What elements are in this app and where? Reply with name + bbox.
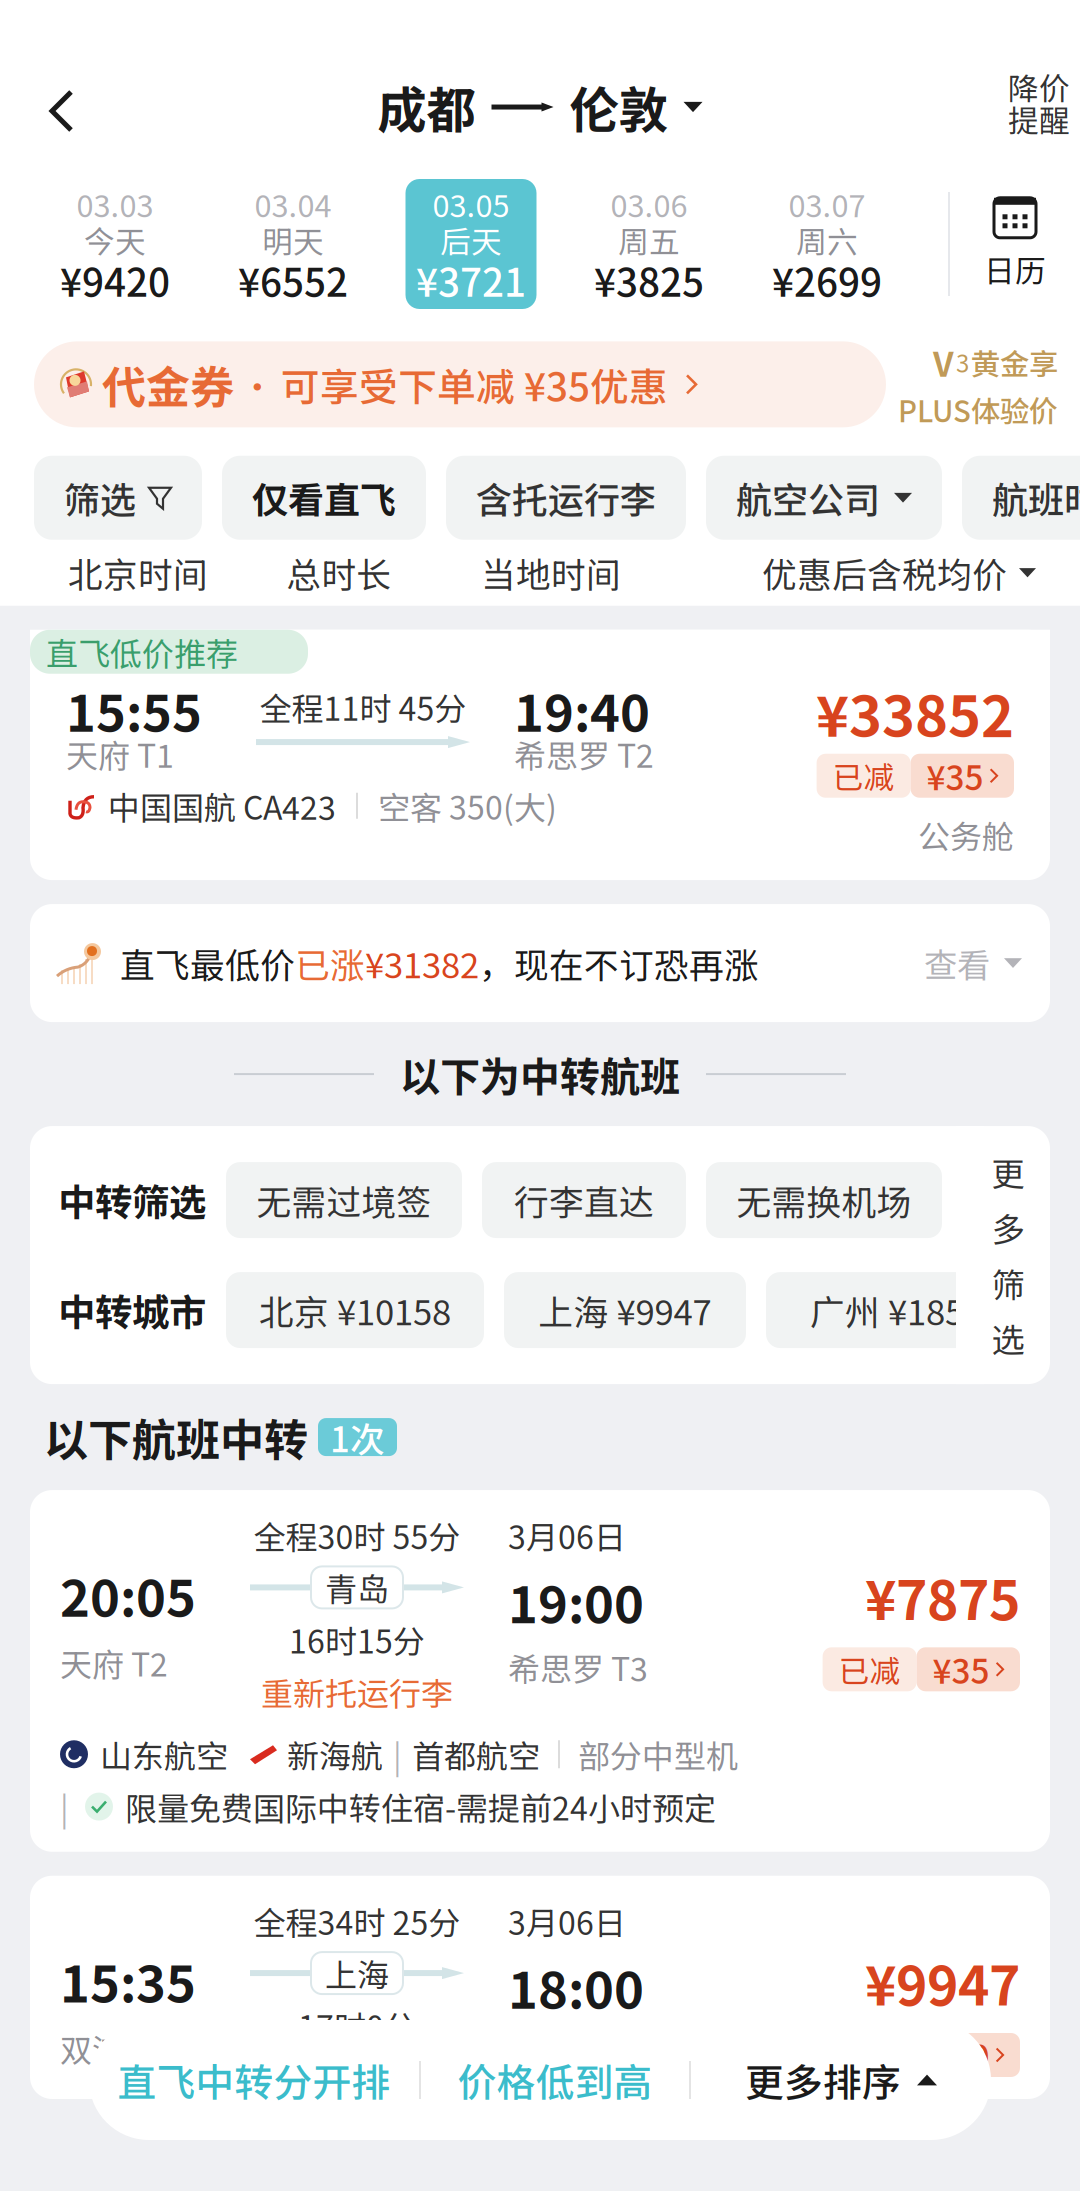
staticText: 03.07	[788, 182, 865, 226]
staticText: 成都	[377, 71, 475, 143]
staticText: 首都航空	[412, 1731, 540, 1777]
button[interactable]: 航空公司	[706, 456, 942, 540]
button[interactable]: 价格低到高	[421, 2020, 689, 2140]
staticText: 航班时间	[992, 472, 1080, 524]
staticText: 03.05	[432, 182, 509, 226]
staticText: 提醒	[1008, 97, 1070, 141]
staticText: 希思罗 T3	[508, 1644, 648, 1690]
staticText: 直飞最低价	[120, 938, 295, 988]
staticText: 已减	[839, 2033, 901, 2077]
button[interactable]: 无需过境签	[226, 1162, 462, 1238]
staticText: 03.06	[610, 182, 687, 226]
button[interactable]: 日历	[950, 179, 1080, 309]
button[interactable]: 上海 ¥9947	[504, 1272, 746, 1348]
staticText: 当地时间	[481, 548, 621, 598]
staticText: 北京 ¥10158	[259, 1285, 451, 1335]
button[interactable]: 直飞最低价	[30, 904, 1050, 1022]
button[interactable]: 返回	[12, 11, 112, 165]
staticText: 部分中型机	[578, 1731, 738, 1777]
staticText: 18:00	[508, 1950, 644, 2023]
button[interactable]: 03.04	[204, 176, 382, 312]
button[interactable]: 行李直达	[482, 1162, 686, 1238]
button[interactable]: 15:55	[30, 630, 1050, 880]
staticText: 山东航空	[100, 1731, 228, 1777]
staticText: 多	[991, 1203, 1024, 1252]
staticText: 16时15分	[289, 1616, 425, 1663]
staticText: 筛	[991, 1259, 1024, 1307]
button[interactable]: 03.05	[382, 176, 560, 312]
button[interactable]: 无需换机场	[706, 1162, 942, 1238]
button[interactable]: 航班时间	[962, 456, 1080, 540]
staticText: 直飞低价推荐	[46, 629, 238, 675]
staticText: 天府 T2	[60, 1639, 168, 1686]
staticText: 优惠后含税均价	[762, 548, 1007, 598]
staticText: 更多排序	[745, 2052, 901, 2108]
staticText: 20:05	[60, 1558, 196, 1631]
staticText: 周五	[618, 218, 680, 262]
staticText: 降价	[1008, 65, 1070, 109]
staticText: 中转城市	[58, 1283, 206, 1337]
staticText: 更	[991, 1148, 1024, 1196]
staticText: 15:35	[60, 1944, 196, 2017]
button[interactable]: V	[886, 338, 1058, 431]
staticText: 含托运行李	[476, 472, 656, 524]
staticText: ¥6552	[238, 252, 348, 308]
staticText: 周六	[796, 218, 858, 262]
staticText: ¥3825	[594, 252, 704, 308]
button[interactable]: 03.06	[560, 176, 738, 312]
staticText: ，现在不订恐再涨	[479, 938, 759, 988]
button[interactable]: 直飞中转分开排	[89, 2020, 419, 2140]
staticText: |	[60, 1783, 69, 1830]
staticText: 广州 ¥185	[810, 1285, 964, 1335]
staticText: 无需过境签	[256, 1175, 431, 1225]
staticText: 全程30时 55分	[253, 1512, 460, 1558]
button[interactable]: 更多排序	[691, 2020, 991, 2140]
button[interactable]: 筛选	[34, 456, 202, 540]
staticText: 03.04	[254, 182, 331, 226]
button[interactable]: 北京时间	[40, 540, 236, 606]
staticText: 日历	[984, 247, 1046, 291]
button[interactable]: 当地时间	[442, 540, 660, 606]
staticText: 今天	[84, 218, 146, 262]
staticText: ¥7875	[865, 1558, 1020, 1635]
staticText: 上海 ¥9947	[538, 1285, 711, 1335]
staticText: 全程34时 25分	[253, 1898, 460, 1944]
staticText: 可享受下单减 ¥35优惠	[281, 356, 668, 412]
button[interactable]: 更	[984, 1139, 1032, 1371]
staticText: 北京时间	[68, 548, 208, 598]
staticText: ·	[240, 359, 275, 409]
staticText: 双流 T2	[60, 2025, 168, 2071]
button[interactable]: 15:35	[30, 1876, 1050, 2099]
staticText: 上海	[325, 1950, 389, 1996]
button[interactable]: 优惠后含税均价	[762, 540, 1036, 606]
staticText: |	[393, 1731, 402, 1777]
button[interactable]: 03.07	[738, 176, 916, 312]
button[interactable]: 总时长	[236, 540, 442, 606]
staticText: ¥33852	[816, 671, 1014, 752]
button[interactable]: 代金券	[34, 341, 886, 427]
button[interactable]: 成都	[377, 11, 702, 135]
staticText: 3月06日	[508, 1512, 626, 1558]
staticText: 航空公司	[736, 472, 880, 524]
staticText: 空客 350(大)	[378, 783, 557, 829]
staticText: 已减	[839, 1647, 901, 1691]
button[interactable]: 含托运行李	[446, 456, 686, 540]
staticText: V	[933, 338, 954, 386]
button[interactable]: 北京 ¥10158	[226, 1272, 484, 1348]
staticText: 3月06日	[508, 1898, 626, 1944]
staticText: 03.03	[76, 182, 153, 226]
button[interactable]: 03.03	[26, 176, 204, 312]
staticText: 选	[991, 1314, 1024, 1362]
button[interactable]: 降价	[970, 11, 1070, 135]
staticText: ¥50	[933, 2031, 990, 2079]
button[interactable]: 20:05	[30, 1490, 1050, 1852]
staticText: 17时0分	[298, 2002, 416, 2048]
staticText: 1次	[330, 1412, 385, 1462]
staticText: 19:00	[508, 1564, 644, 1638]
button[interactable]: 广州 ¥185	[766, 1272, 1008, 1348]
staticText: ¥9420	[60, 252, 170, 308]
button[interactable]: 仅看直飞	[222, 456, 426, 540]
staticText: ¥9947	[865, 1944, 1020, 2021]
staticText: 行李直达	[514, 1175, 654, 1225]
staticText: 全程11时 45分	[259, 684, 466, 730]
